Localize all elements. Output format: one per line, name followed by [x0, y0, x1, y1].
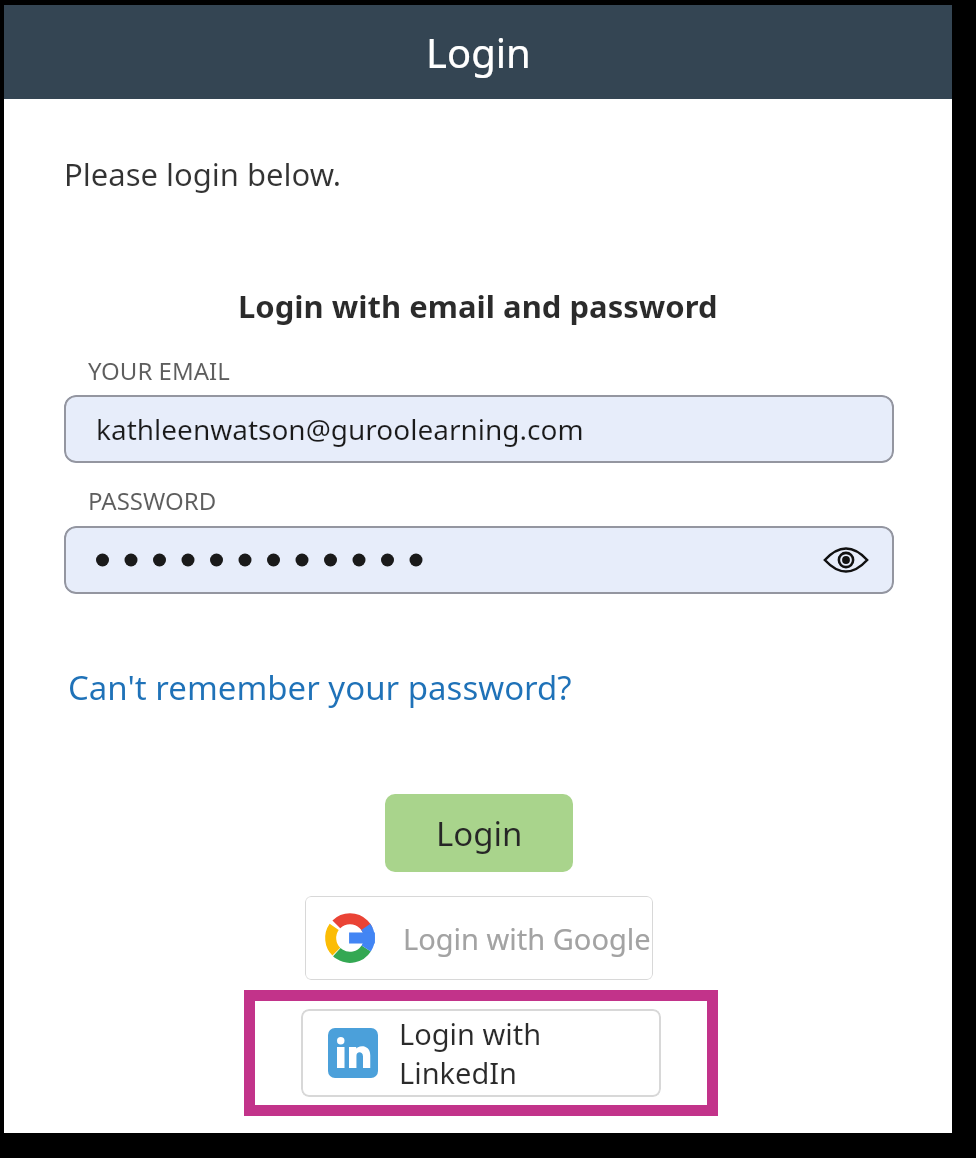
- staticText: Login with Google: [403, 919, 651, 958]
- staticText: Can't remember your password?: [68, 665, 572, 710]
- button[interactable]: Login with Google: [305, 896, 653, 980]
- staticText: kathleenwatson@guroolearning.com: [96, 410, 584, 448]
- button[interactable]: Show password: [818, 532, 874, 588]
- staticText: Login with LinkedIn: [399, 1014, 661, 1092]
- staticText: Login: [426, 25, 531, 79]
- button[interactable]: Can't remember your password?: [64, 663, 576, 712]
- staticText: Login with email and password: [238, 285, 718, 327]
- button[interactable]: Login: [385, 794, 573, 872]
- staticText: YOUR EMAIL: [88, 354, 230, 387]
- staticText: Please login below.: [64, 153, 342, 195]
- button[interactable]: kathleenwatson@guroolearning.com: [64, 395, 894, 463]
- staticText: PASSWORD: [88, 484, 217, 517]
- button[interactable]: Login with LinkedIn: [301, 1009, 661, 1097]
- staticText: Login: [436, 811, 523, 856]
- button[interactable]: Show password: [64, 526, 894, 594]
